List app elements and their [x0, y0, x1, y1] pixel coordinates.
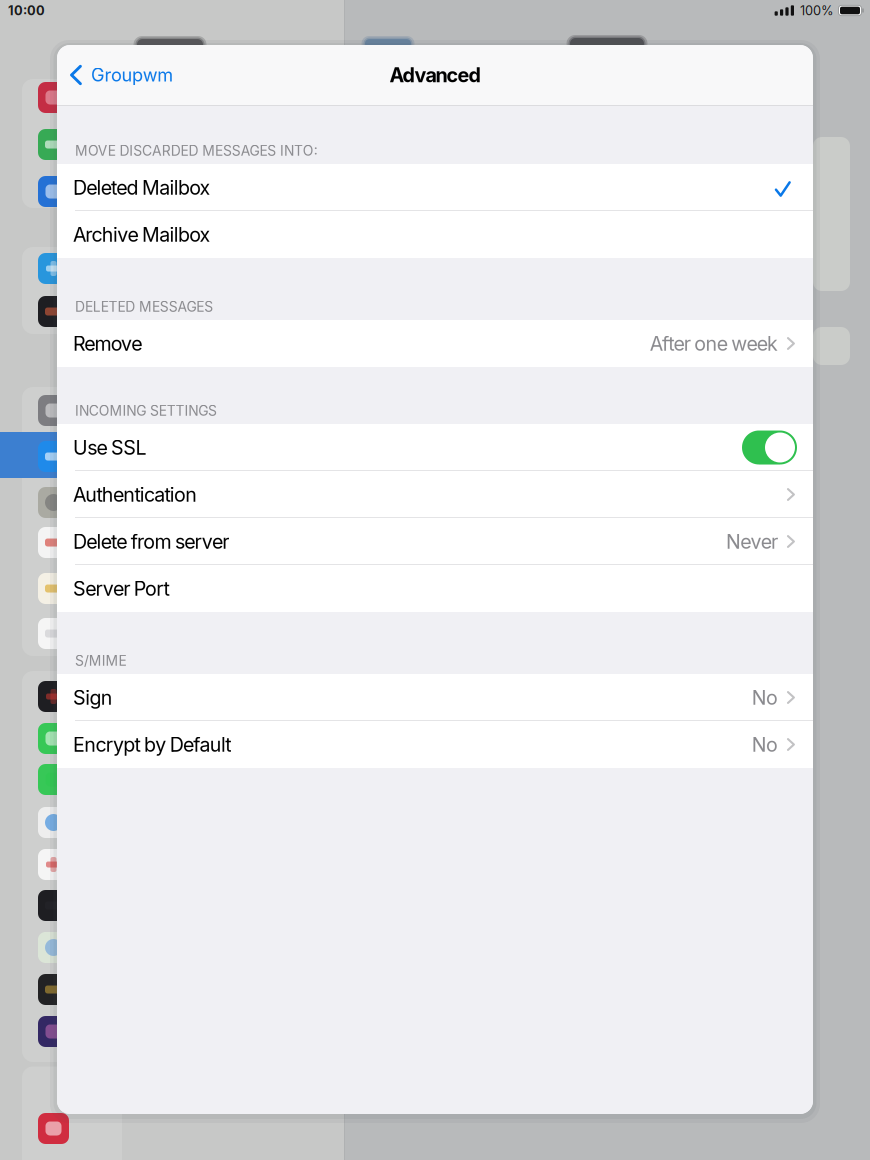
staticText: Never — [726, 530, 778, 553]
staticText: Remove — [73, 332, 142, 355]
button[interactable]: Delete from server — [57, 518, 813, 565]
staticText: S/MIME — [75, 652, 126, 669]
button[interactable]: Groupwm — [57, 45, 185, 105]
staticText: Encrypt by Default — [73, 733, 231, 756]
staticText: Groupwm — [91, 64, 173, 86]
staticText: MOVE DISCARDED MESSAGES INTO: — [75, 142, 318, 159]
staticText: DELETED MESSAGES — [75, 298, 213, 315]
staticText: Delete from server — [73, 530, 229, 553]
staticText: Server Port — [73, 577, 169, 600]
staticText: Archive Mailbox — [73, 223, 210, 246]
staticText: Deleted Mailbox — [73, 176, 210, 199]
staticText: Advanced — [389, 63, 480, 87]
staticText: After one week — [650, 332, 778, 355]
staticText: 100% — [800, 3, 834, 18]
button[interactable]: Archive Mailbox — [57, 211, 813, 258]
button[interactable]: Deleted Mailbox — [57, 164, 813, 211]
staticText: No — [752, 686, 778, 709]
staticText: No — [752, 733, 778, 756]
staticText: Authentication — [73, 483, 197, 506]
staticText: Sign — [73, 686, 113, 709]
button[interactable]: Sign — [57, 674, 813, 721]
button[interactable]: Authentication — [57, 471, 813, 518]
button[interactable]: Encrypt by Default — [57, 721, 813, 768]
button[interactable]: Server Port — [57, 565, 813, 612]
staticText: 10:00 — [8, 3, 45, 18]
staticText: INCOMING SETTINGS — [75, 402, 217, 419]
button[interactable]: Remove — [57, 320, 813, 367]
staticText: Use SSL — [73, 436, 146, 459]
